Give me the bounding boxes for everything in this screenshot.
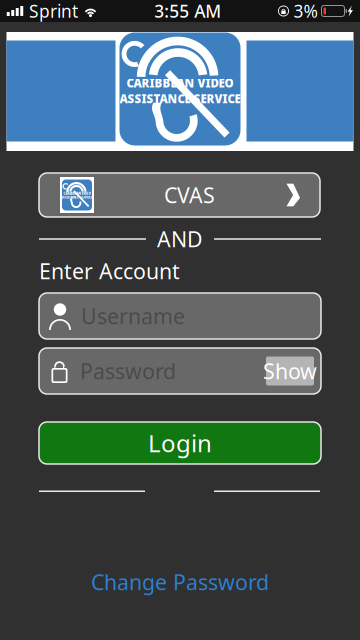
staticText: AND (157, 225, 203, 253)
staticText: 3% (293, 0, 317, 22)
staticText: Enter Account (39, 257, 180, 285)
staticText: 3:55 AM (154, 0, 221, 22)
staticText: Change Password (91, 568, 269, 596)
staticText: Password (80, 357, 176, 385)
staticText: ASSISTANCE SERVICE (61, 195, 93, 199)
button[interactable]: Login (39, 422, 321, 464)
staticText: CARIBBEAN VIDEO (63, 192, 90, 195)
button[interactable]: Show (266, 356, 314, 385)
staticText: CARIBBEAN VIDEO (126, 75, 233, 91)
staticText: CVAS (164, 181, 215, 209)
button[interactable]: Forgot Password (207, 464, 327, 492)
staticText: Show (263, 357, 317, 385)
staticText: ASSISTANCE SERVICE (119, 91, 240, 106)
staticText: Login (148, 427, 212, 459)
button[interactable]: CARIBBEAN VIDEO (39, 173, 320, 217)
staticText: Username (81, 302, 185, 330)
staticText: Sprint (29, 0, 78, 22)
button[interactable]: Forgot Username (32, 464, 152, 492)
button[interactable]: Change Password (90, 567, 270, 597)
